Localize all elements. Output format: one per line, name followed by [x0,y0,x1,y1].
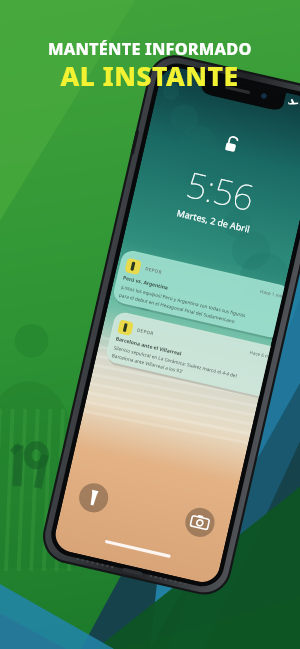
button[interactable]: Manténte informado al instante [0,0,300,649]
button[interactable]: Manténte informado al instante [45,0,255,60]
